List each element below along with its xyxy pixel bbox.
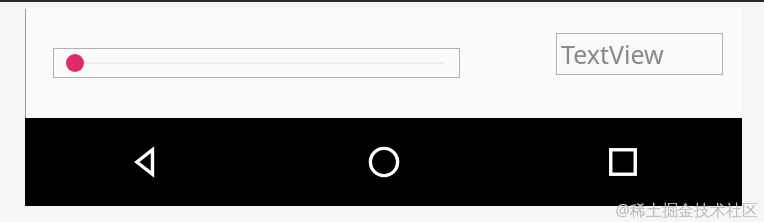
button[interactable]: TextView (556, 33, 723, 75)
staticText: TextView (561, 37, 664, 71)
button[interactable]: Back (25, 118, 264, 206)
button[interactable] (53, 48, 460, 78)
staticText: @稀土掘金技术社区 (615, 199, 758, 221)
button[interactable]: Home (264, 118, 503, 206)
button[interactable]: Recent apps (503, 118, 742, 206)
